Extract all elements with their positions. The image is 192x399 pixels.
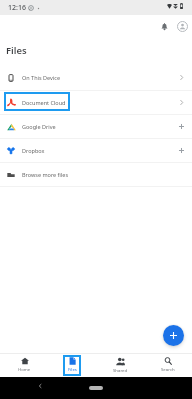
button[interactable]: Notifications — [156, 18, 172, 34]
staticText: Home — [18, 366, 31, 372]
staticText: Dropbox — [22, 147, 45, 154]
button[interactable]: Back — [37, 383, 43, 389]
staticText: Document Cloud — [22, 99, 66, 106]
button[interactable]: Add — [163, 325, 184, 346]
button[interactable]: Document Cloud — [0, 91, 192, 114]
button[interactable]: Shared — [96, 354, 144, 377]
button[interactable]: Google Drive — [0, 115, 192, 138]
staticText: Browse more files — [22, 171, 69, 178]
staticText: Google Drive — [22, 123, 56, 130]
button[interactable]: Search — [144, 354, 192, 377]
button[interactable]: Home gesture — [89, 386, 103, 390]
button[interactable]: Browse more files — [0, 163, 192, 186]
staticText: On This Device — [22, 74, 61, 81]
staticText: Shared — [113, 367, 128, 373]
staticText: Files — [6, 44, 27, 57]
button[interactable]: Files — [48, 354, 96, 377]
button[interactable]: Account — [174, 18, 190, 34]
staticText: Files — [68, 366, 77, 372]
staticText: 12:16 — [8, 3, 26, 13]
button[interactable]: Dropbox — [0, 139, 192, 162]
button[interactable]: Home — [0, 354, 48, 377]
button[interactable]: On This Device — [0, 65, 192, 90]
staticText: Search — [161, 366, 175, 372]
